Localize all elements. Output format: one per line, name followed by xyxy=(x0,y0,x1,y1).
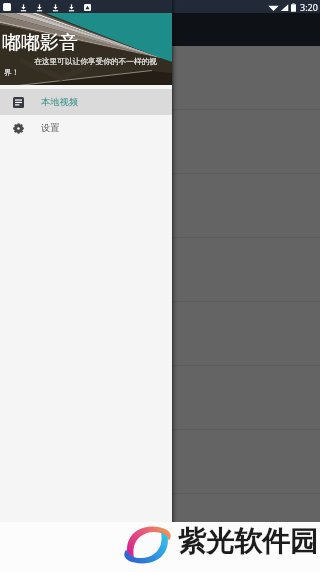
staticText: 界！ xyxy=(4,68,20,78)
staticText: 3:20 xyxy=(300,1,318,13)
staticText: 设置 xyxy=(41,122,60,134)
staticText: 在这里可以让你享受你的不一样的视 xyxy=(34,57,157,67)
staticText: 本地视频 xyxy=(41,96,79,108)
button[interactable]: 设置 xyxy=(0,115,172,141)
button[interactable]: 本地视频 xyxy=(0,89,172,115)
staticText: 紫光软件园 xyxy=(178,524,318,559)
staticText: 嘟嘟影音 xyxy=(2,31,78,55)
